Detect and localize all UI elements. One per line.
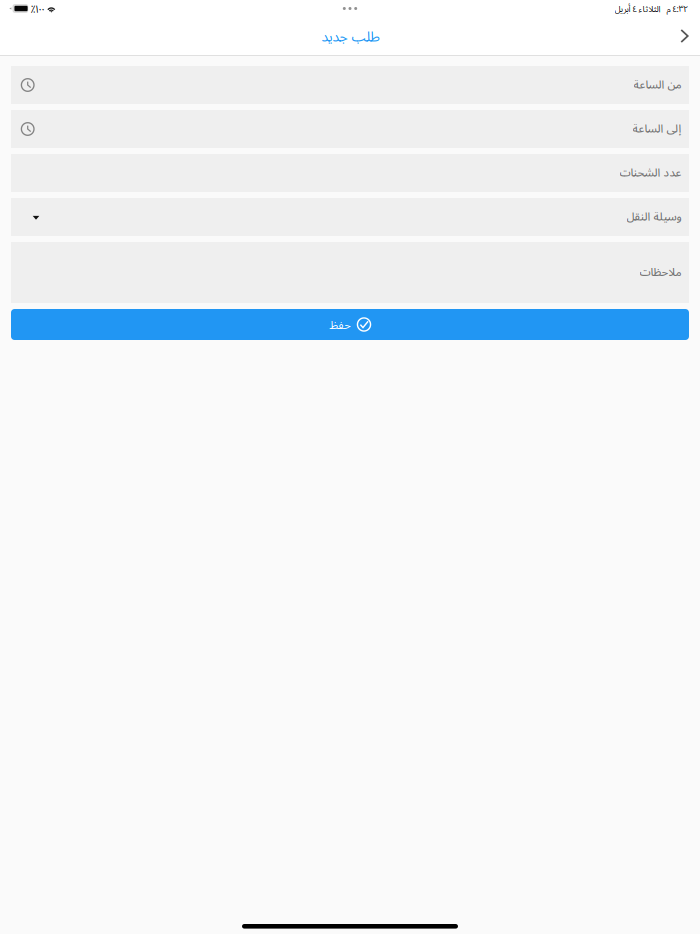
staticText: طلب جديد xyxy=(321,26,379,46)
button[interactable]: وسيلة النقل xyxy=(11,198,689,236)
staticText: ملاحظات xyxy=(639,264,681,279)
button[interactable]: ملاحظات xyxy=(11,242,689,303)
button[interactable]: من الساعة xyxy=(11,66,689,104)
staticText: إلى الساعة xyxy=(632,120,681,136)
staticText: من الساعة xyxy=(633,76,681,92)
button[interactable]: إلى الساعة xyxy=(11,110,689,148)
staticText: عدد الشحنات xyxy=(619,164,681,180)
button[interactable]: عدد الشحنات xyxy=(11,154,689,192)
button[interactable]: حفظ xyxy=(11,309,689,340)
staticText: ‏١٠٠٪ xyxy=(30,1,44,16)
staticText: وسيلة النقل xyxy=(626,208,681,224)
staticText: حفظ xyxy=(329,317,351,332)
button[interactable]: Back xyxy=(669,20,699,52)
staticText: ٤:٣٢ م xyxy=(666,2,687,14)
staticText: الثلاثاء ٤ أبريل xyxy=(614,2,660,14)
